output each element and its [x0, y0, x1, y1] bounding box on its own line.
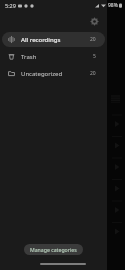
staticText: 20 [90, 70, 96, 77]
button[interactable]: Settings [86, 13, 102, 29]
staticText: Trash [21, 53, 37, 61]
staticText: 98% [108, 2, 118, 9]
staticText: Manage categories [30, 246, 77, 253]
staticText: 5:29 [5, 2, 16, 9]
staticText: Uncategorized [21, 70, 63, 78]
staticText: All recordings [21, 36, 61, 44]
staticText: 20 [90, 36, 96, 43]
button[interactable]: Trash [2, 49, 105, 64]
staticText: 5 [93, 53, 96, 60]
button[interactable]: Uncategorized [2, 66, 105, 81]
button[interactable]: Manage categories [24, 244, 83, 255]
button[interactable]: All recordings [2, 32, 105, 47]
